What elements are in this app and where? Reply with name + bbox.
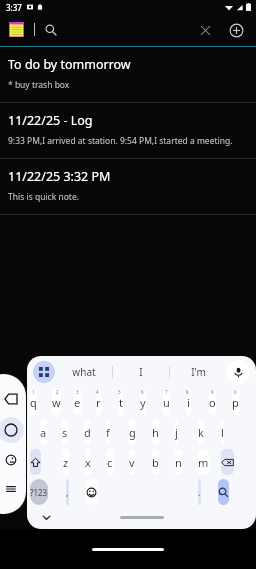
button[interactable]: g [129, 419, 136, 445]
button[interactable]: x [85, 449, 91, 475]
staticText: I [139, 365, 143, 379]
staticText: h [152, 425, 159, 440]
button[interactable]: o [209, 389, 216, 415]
staticText: e [74, 395, 81, 410]
button[interactable]: Clipboard [0, 388, 22, 410]
button[interactable]: t [118, 389, 123, 415]
staticText: I'm [191, 365, 206, 379]
button[interactable]: To do by tommorrow [0, 47, 256, 102]
staticText: * buy trash box [8, 79, 70, 91]
button[interactable]: y [140, 389, 146, 415]
staticText: 3:37 [6, 2, 22, 13]
staticText: 0 [234, 389, 237, 395]
staticText: 1 [32, 389, 35, 395]
button[interactable]: Add note [224, 18, 248, 42]
staticText: 9 [211, 389, 214, 395]
button[interactable]: . [198, 479, 201, 505]
staticText: This is quick note. [8, 191, 79, 203]
staticText: 9:33 PM,I arrived at station. 9:54 PM,I … [8, 135, 233, 147]
button[interactable]: Clear search [193, 18, 217, 42]
button[interactable]: n [175, 449, 182, 475]
staticText: 5 [118, 389, 121, 395]
button[interactable]: Shift [30, 449, 41, 475]
staticText: v [129, 455, 135, 470]
button[interactable]: s [62, 419, 68, 445]
button[interactable]: j [175, 419, 178, 445]
staticText: l [221, 425, 224, 440]
staticText: 11/22/25 - Log [8, 112, 93, 129]
staticText: 7 [165, 389, 168, 395]
button[interactable]: , [66, 479, 69, 505]
staticText: t [119, 395, 123, 410]
staticText: q [30, 395, 37, 410]
button[interactable]: I [113, 356, 169, 388]
staticText: r [96, 395, 101, 410]
button[interactable]: App icon [8, 21, 25, 38]
staticText: j [175, 425, 178, 440]
staticText: 6 [141, 389, 144, 395]
staticText: b [152, 455, 159, 470]
button[interactable]: 11/22/25 - Log [0, 103, 256, 158]
staticText: To do by tommorrow [8, 56, 131, 73]
button[interactable]: b [152, 449, 159, 475]
button[interactable]: k [198, 419, 204, 445]
button[interactable]: Backspace [221, 449, 234, 475]
staticText: m [198, 455, 209, 470]
button[interactable]: f [106, 419, 110, 445]
button[interactable]: i [186, 389, 191, 415]
staticText: a [40, 425, 47, 440]
staticText: i [187, 395, 190, 410]
button[interactable]: e [74, 389, 81, 415]
button[interactable]: z [63, 449, 69, 475]
staticText: c [107, 455, 113, 470]
button[interactable]: I'm [170, 356, 226, 388]
staticText: 8 [186, 389, 189, 395]
staticText: g [129, 425, 136, 440]
button[interactable]: q [30, 389, 37, 415]
button[interactable]: Voice input [226, 360, 250, 384]
staticText: k [198, 425, 204, 440]
button[interactable]: Emoji [0, 449, 22, 471]
staticText: x [85, 455, 91, 470]
staticText: n [175, 455, 182, 470]
staticText: . [198, 486, 201, 498]
staticText: u [163, 395, 170, 410]
button[interactable]: l [221, 419, 224, 445]
staticText: f [106, 425, 110, 440]
staticText: z [63, 455, 69, 470]
button[interactable]: Search [41, 20, 61, 40]
button[interactable]: Emoji [86, 479, 97, 505]
staticText: , [66, 486, 69, 498]
button[interactable]: Keyboard tools [33, 361, 55, 383]
button[interactable]: c [107, 449, 113, 475]
button[interactable]: Palette [0, 417, 24, 443]
button[interactable]: v [129, 449, 135, 475]
button[interactable]: p [232, 389, 239, 415]
staticText: p [232, 395, 239, 410]
staticText: 4 [96, 389, 99, 395]
button[interactable]: More options [0, 478, 22, 500]
button[interactable]: Hide keyboard [37, 508, 55, 526]
staticText: 11/22/25 3:32 PM [8, 168, 111, 185]
button[interactable]: ?123 [30, 479, 48, 505]
button[interactable]: u [163, 389, 170, 415]
button[interactable]: d [84, 419, 91, 445]
button[interactable]: w [52, 389, 61, 415]
button[interactable]: 11/22/25 3:32 PM [0, 159, 256, 214]
staticText: ?123 [30, 487, 48, 498]
button[interactable]: r [96, 389, 101, 415]
staticText: 3 [76, 389, 79, 395]
staticText: d [84, 425, 91, 440]
staticText: 2 [56, 389, 59, 395]
button[interactable]: what [55, 356, 112, 388]
staticText: what [72, 365, 96, 379]
button[interactable]: m [198, 449, 209, 475]
staticText: o [209, 395, 216, 410]
button[interactable]: a [40, 419, 47, 445]
button[interactable]: Search [218, 479, 229, 505]
staticText: w [52, 395, 61, 410]
button[interactable]: h [152, 419, 159, 445]
staticText: s [62, 425, 68, 440]
staticText: y [140, 395, 146, 410]
